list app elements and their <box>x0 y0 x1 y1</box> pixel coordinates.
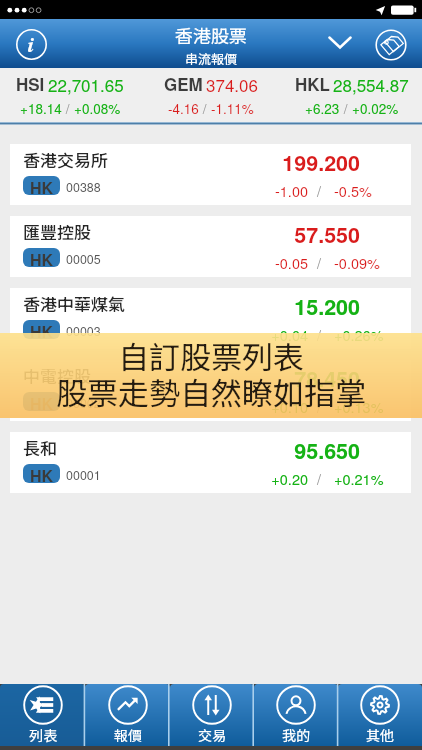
staticText: +0.08% <box>74 99 121 118</box>
staticText: / <box>317 324 322 345</box>
staticText: / <box>317 396 322 417</box>
staticText: 00005 <box>66 250 101 268</box>
staticText: 匯豐控股 <box>23 219 91 244</box>
staticText: 22,701.65 <box>48 72 124 96</box>
staticText: 交易 <box>198 725 226 745</box>
staticText: +0.21% <box>334 468 384 489</box>
staticText: 中電控股 <box>23 363 91 388</box>
staticText: 香港交易所 <box>23 147 108 172</box>
button[interactable]: Info <box>16 29 47 60</box>
button[interactable]: 其他 <box>338 684 422 746</box>
button[interactable]: 報價 <box>85 684 170 746</box>
staticText: 28,554.87 <box>333 72 409 96</box>
staticText: 95.650 <box>160 435 360 466</box>
staticText: GEM <box>164 72 203 96</box>
staticText: +0.04 <box>160 324 308 345</box>
staticText: +0.26% <box>334 324 384 345</box>
staticText: HK <box>30 176 54 195</box>
button[interactable]: 列表 <box>0 684 85 746</box>
staticText: / <box>199 99 211 118</box>
staticText: -0.09% <box>334 252 380 273</box>
button[interactable]: HKL <box>281 68 422 122</box>
staticText: HK <box>30 248 54 267</box>
staticText: 香港中華煤氣 <box>23 291 125 316</box>
staticText: -0.05 <box>160 252 308 273</box>
staticText: +6.23 <box>305 99 340 118</box>
staticText: 00001 <box>66 466 101 484</box>
staticText: -1.00 <box>160 180 308 201</box>
staticText: -4.16 <box>168 99 199 118</box>
staticText: 199.200 <box>160 147 360 178</box>
staticText: 自訂股票列表 股票走勢自然瞭如指掌 <box>0 333 422 414</box>
staticText: / <box>340 99 352 118</box>
staticText: +0.02% <box>352 99 399 118</box>
staticText: -0.5% <box>334 180 372 201</box>
button[interactable]: 香港中華煤氣 <box>10 288 411 349</box>
staticText: +0.20 <box>160 468 308 489</box>
staticText: +18.14 <box>20 99 62 118</box>
staticText: 我的 <box>282 725 310 745</box>
staticText: 15.200 <box>160 291 360 322</box>
staticText: 其他 <box>366 725 394 745</box>
staticText: 00002 <box>66 394 101 412</box>
button[interactable]: 匯豐控股 <box>10 216 411 277</box>
staticText: / <box>62 99 74 118</box>
staticText: HK <box>30 320 54 339</box>
staticText: / <box>317 468 322 489</box>
button[interactable]: GEM <box>140 68 281 122</box>
staticText: / <box>317 252 322 273</box>
staticText: 00388 <box>66 178 101 196</box>
staticText: 78.450 <box>160 363 360 394</box>
staticText: / <box>317 180 322 201</box>
staticText: 報價 <box>114 725 142 745</box>
staticText: 香港股票 <box>175 22 247 48</box>
staticText: 串流報價 <box>185 49 238 68</box>
staticText: +0.10 <box>160 396 308 417</box>
staticText: 57.550 <box>160 219 360 250</box>
staticText: HK <box>30 392 54 411</box>
button[interactable]: 長和 <box>10 432 411 493</box>
button[interactable]: 中電控股 <box>10 360 411 421</box>
staticText: 長和 <box>23 435 57 460</box>
staticText: HK <box>30 464 54 483</box>
staticText: i <box>28 28 35 59</box>
staticText: HKL <box>295 72 330 96</box>
button[interactable]: 我的 <box>254 684 338 746</box>
button[interactable]: Price tags <box>375 29 407 61</box>
staticText: 374.06 <box>206 72 258 96</box>
button[interactable]: HSI <box>0 68 140 122</box>
button[interactable]: 自訂股票列表 股票走勢自然瞭如指掌 <box>0 333 422 418</box>
staticText: HSI <box>16 72 45 96</box>
button[interactable]: Expand <box>322 24 358 60</box>
staticText: 00003 <box>66 322 101 340</box>
staticText: -1.11% <box>211 99 254 118</box>
button[interactable]: 交易 <box>170 684 254 746</box>
button[interactable]: 香港交易所 <box>10 144 411 205</box>
staticText: 列表 <box>29 725 57 745</box>
staticText: +0.13% <box>334 396 384 417</box>
